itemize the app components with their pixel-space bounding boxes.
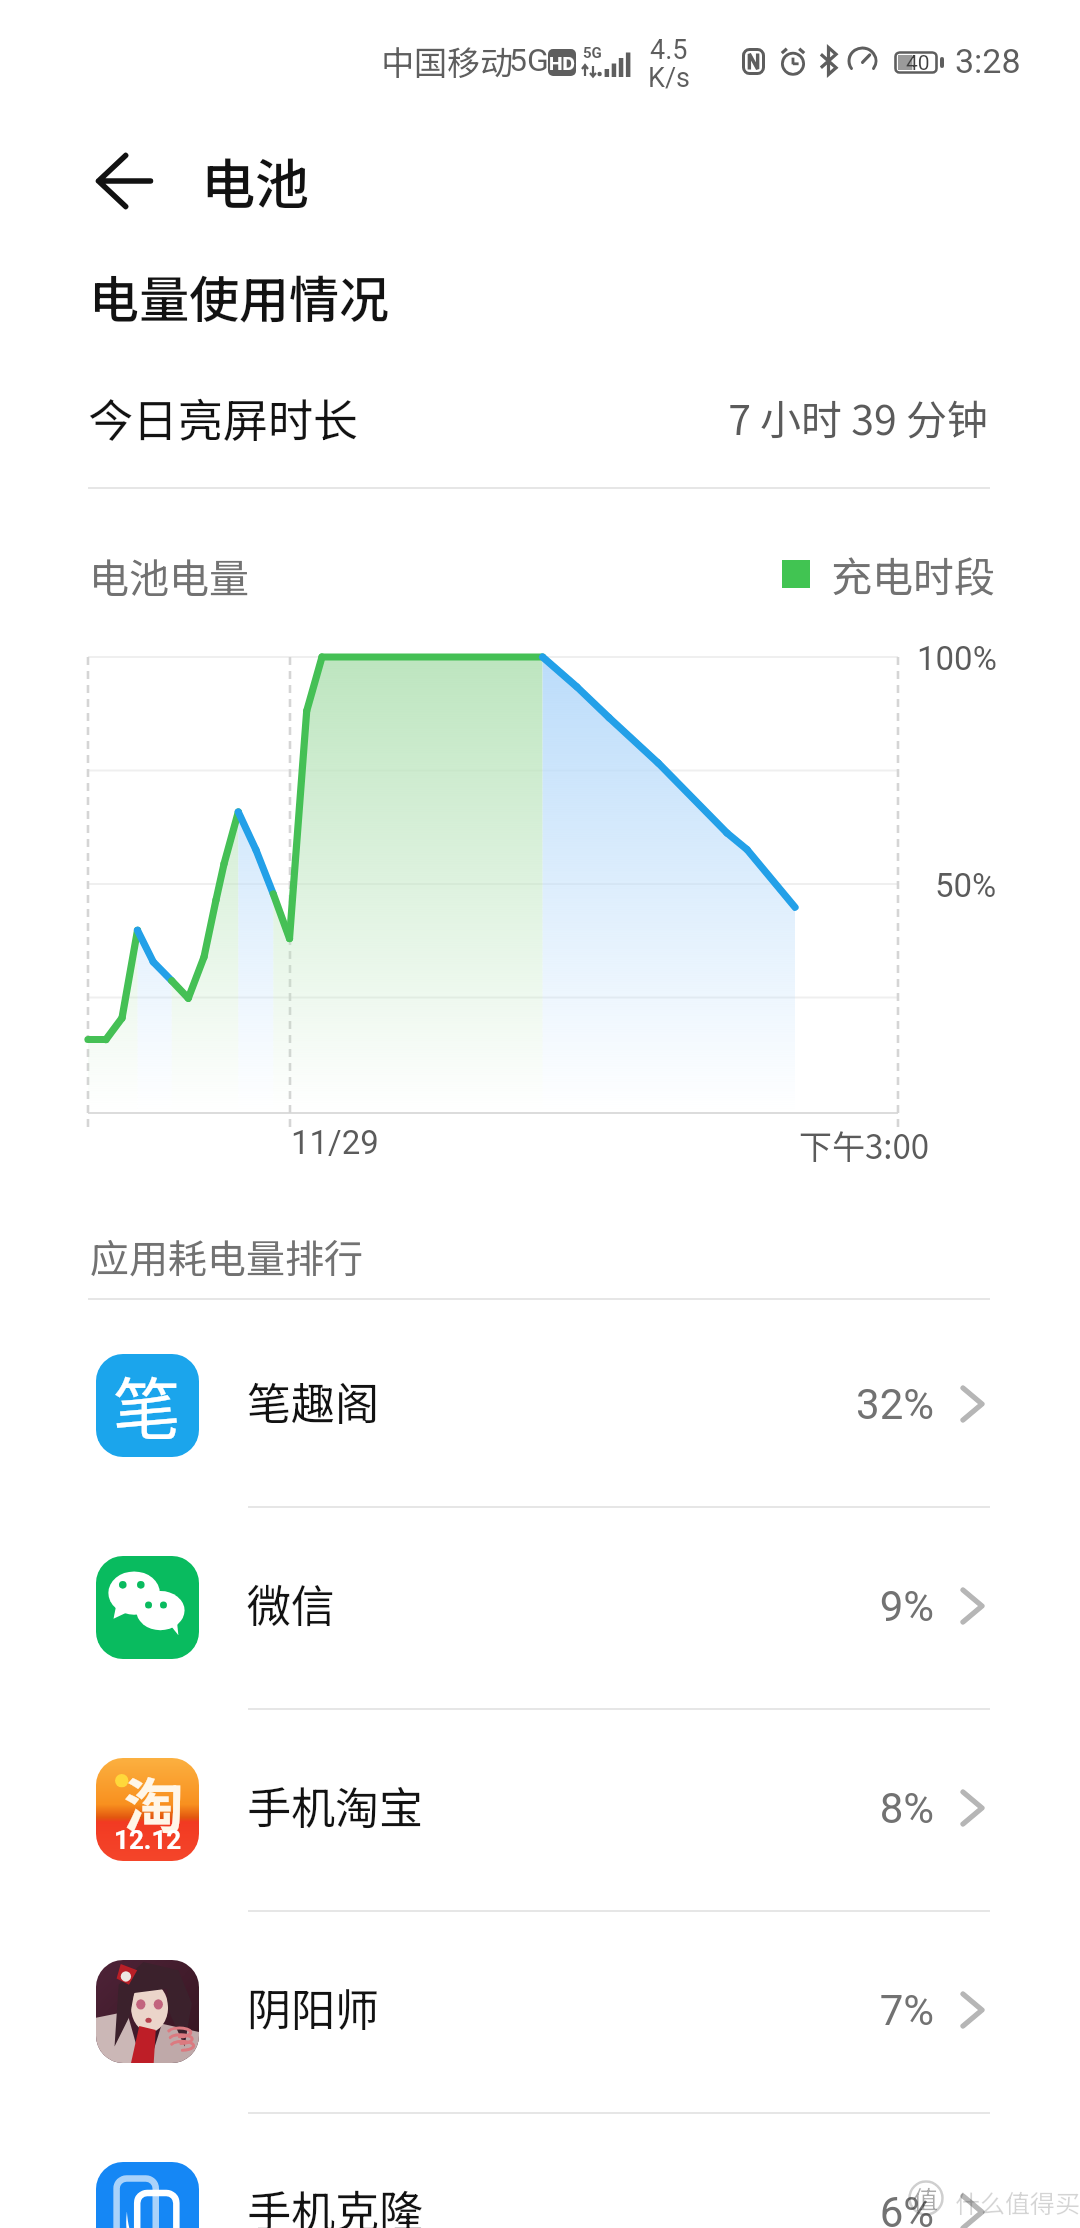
staticText: 手机淘宝 — [247, 1773, 423, 1837]
staticText: 电量使用情况 — [89, 260, 389, 332]
button[interactable]: 微信 — [0, 1506, 1080, 1709]
staticText: 6% — [600, 2188, 934, 2228]
staticText: 电池电量 — [89, 547, 249, 605]
staticText: 12.12 — [114, 1825, 182, 1855]
staticText: 5G — [509, 41, 549, 79]
staticText: 3:28 — [955, 41, 1021, 81]
staticText: 4.5 — [650, 34, 688, 66]
staticText: K/s — [648, 62, 691, 94]
staticText: 40 — [906, 51, 930, 76]
staticText: 100% — [917, 639, 997, 678]
staticText: 电池 — [201, 141, 309, 219]
staticText: 32% — [600, 1380, 934, 1429]
staticText: 手机克隆 — [247, 2177, 423, 2228]
staticText: 什么值得买 — [955, 2184, 1080, 2220]
staticText: 9% — [600, 1582, 934, 1631]
staticText: 11/29 — [291, 1123, 379, 1162]
staticText: 8% — [600, 1784, 934, 1833]
button[interactable]: 笔 — [0, 1304, 1080, 1507]
button[interactable]: 淘 — [0, 1708, 1080, 1911]
button[interactable]: 手机克隆 — [0, 2112, 1080, 2228]
staticText: 淘 — [124, 1758, 184, 1845]
staticText: 笔趣阁 — [247, 1369, 379, 1433]
staticText: 5G — [583, 44, 602, 62]
staticText: HD — [549, 52, 575, 74]
staticText: 充电时段 — [831, 544, 995, 603]
staticText: 值 — [913, 2180, 939, 2216]
staticText: 7 小时 39 分钟 — [590, 387, 988, 446]
staticText: 笔 — [113, 1355, 182, 1453]
staticText: 7% — [600, 1986, 934, 2035]
staticText: 应用耗电量排行 — [90, 1228, 364, 1284]
staticText: 微信 — [247, 1571, 335, 1635]
staticText: 中国移动 — [381, 37, 513, 85]
staticText: 今日亮屏时长 — [88, 385, 359, 450]
staticText: 阴阳师 — [247, 1975, 379, 2039]
staticText: 下午3:00 — [799, 1121, 930, 1169]
staticText: 50% — [935, 866, 997, 905]
button[interactable]: Back — [68, 125, 180, 237]
button[interactable]: 阴阳师 — [0, 1910, 1080, 2113]
